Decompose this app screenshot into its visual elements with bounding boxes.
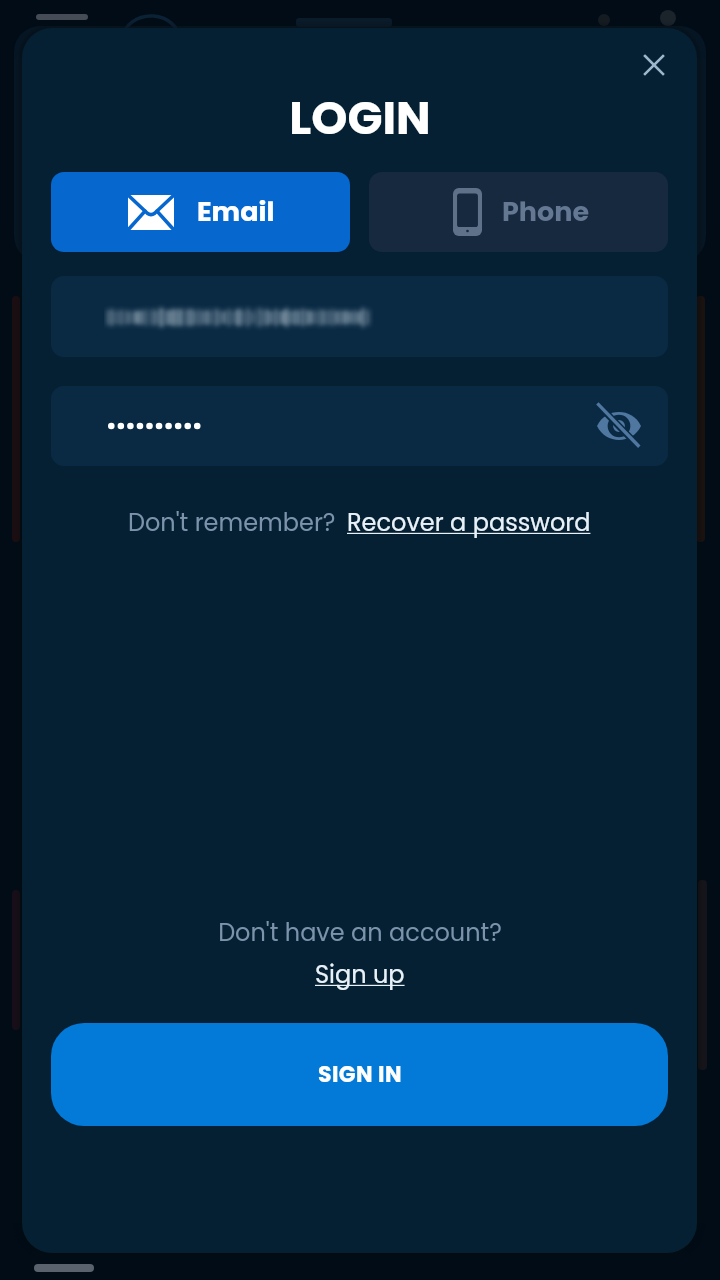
button[interactable] — [51, 276, 668, 357]
button[interactable]: Recover a password — [347, 506, 591, 540]
button[interactable]: Sign up — [315, 958, 405, 992]
button[interactable]: Show password — [590, 397, 648, 455]
button[interactable]: Email — [51, 172, 350, 252]
staticText: LOGIN — [289, 86, 431, 150]
staticText: Don't have an account? — [218, 916, 502, 950]
staticText: Don't remember? — [128, 506, 336, 540]
staticText: SIGN IN — [318, 1059, 402, 1090]
button[interactable]: SIGN IN — [51, 1023, 668, 1126]
button[interactable]: Close — [623, 34, 685, 96]
staticText: Sign up — [315, 958, 405, 992]
staticText: Phone — [502, 193, 590, 231]
button[interactable]: Phone — [369, 172, 668, 252]
staticText: Email — [197, 193, 275, 231]
staticText: Recover a password — [347, 506, 591, 540]
